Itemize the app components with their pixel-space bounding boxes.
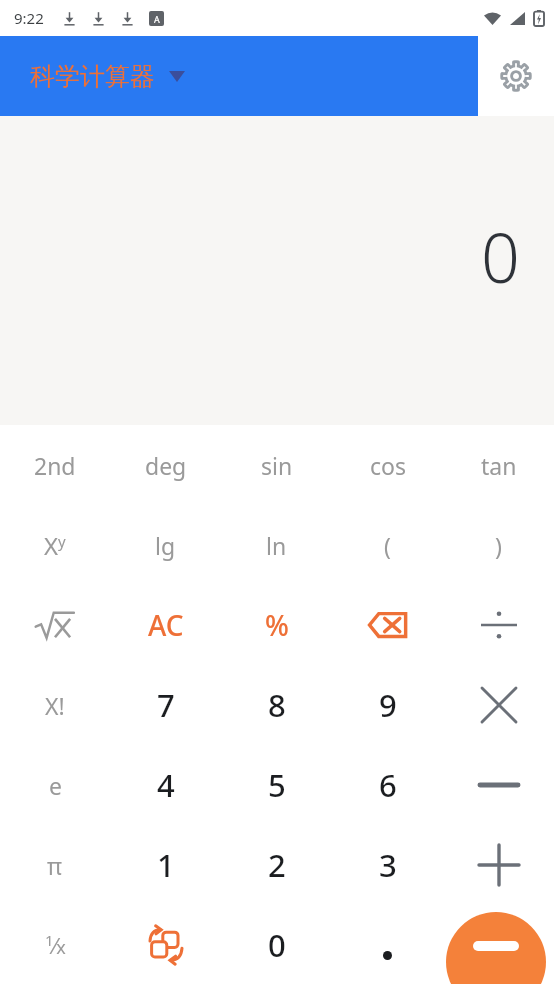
button[interactable]: 5	[221, 745, 332, 825]
staticText: 7	[157, 684, 175, 726]
button[interactable]: sin	[221, 425, 332, 505]
staticText: X!	[45, 690, 65, 721]
staticText: %	[265, 606, 289, 644]
staticText: deg	[145, 450, 187, 481]
button[interactable]: Square root	[0, 585, 110, 665]
staticText: 9	[379, 684, 397, 726]
button[interactable]: Settings	[478, 36, 554, 116]
staticText: 科学计算器	[30, 61, 155, 92]
staticText: 6	[379, 764, 397, 806]
staticText: 8	[268, 684, 286, 726]
staticText: 0	[268, 924, 286, 966]
button[interactable]: Xy	[0, 505, 110, 585]
button[interactable]: 6	[332, 745, 443, 825]
button[interactable]: Convert	[110, 905, 221, 984]
button[interactable]: 2	[221, 825, 332, 905]
staticText: 2nd	[34, 450, 76, 481]
button[interactable]: )	[443, 505, 554, 585]
button[interactable]: Multiply	[443, 665, 554, 745]
button[interactable]: 3	[332, 825, 443, 905]
staticText: cos	[370, 450, 406, 481]
staticText: (	[384, 530, 391, 561]
staticText: 4	[157, 764, 175, 806]
button[interactable]: Equals	[446, 912, 546, 984]
button[interactable]: 1	[110, 825, 221, 905]
staticText: Xy	[44, 529, 66, 562]
staticText: 3	[379, 844, 397, 886]
staticText: 1⁄x	[45, 930, 66, 960]
button[interactable]: 7	[110, 665, 221, 745]
button[interactable]: e	[0, 745, 110, 825]
button[interactable]: AC	[110, 585, 221, 665]
staticText: lg	[155, 530, 176, 561]
button[interactable]: 4	[110, 745, 221, 825]
staticText: e	[49, 770, 62, 801]
staticText: sin	[261, 450, 293, 481]
button[interactable]: 1⁄x	[0, 905, 110, 984]
staticText: ln	[266, 530, 287, 561]
button[interactable]: ln	[221, 505, 332, 585]
button[interactable]: Minus	[443, 745, 554, 825]
staticText: )	[495, 530, 502, 561]
button[interactable]: Decimal point	[332, 905, 443, 984]
staticText: A	[154, 13, 160, 25]
button[interactable]: 0	[221, 905, 332, 984]
button[interactable]: Divide	[443, 585, 554, 665]
staticText: 9:22	[14, 8, 44, 28]
button[interactable]: cos	[332, 425, 443, 505]
button[interactable]: lg	[110, 505, 221, 585]
button[interactable]: %	[221, 585, 332, 665]
button[interactable]: 科学计算器	[0, 36, 478, 116]
button[interactable]: π	[0, 825, 110, 905]
button[interactable]: (	[332, 505, 443, 585]
button[interactable]: 9	[332, 665, 443, 745]
button[interactable]: 8	[221, 665, 332, 745]
button[interactable]: Plus	[443, 825, 554, 905]
staticText: AC	[148, 606, 184, 644]
staticText: tan	[481, 450, 517, 481]
button[interactable]: deg	[110, 425, 221, 505]
button[interactable]: X!	[0, 665, 110, 745]
staticText: 0	[481, 210, 520, 303]
button[interactable]: 2nd	[0, 425, 110, 505]
staticText: π	[47, 850, 63, 881]
staticText: 2	[268, 844, 286, 886]
staticText: 1	[157, 844, 175, 886]
button[interactable]: Backspace	[332, 585, 443, 665]
button[interactable]: tan	[443, 425, 554, 505]
staticText: 5	[268, 764, 286, 806]
